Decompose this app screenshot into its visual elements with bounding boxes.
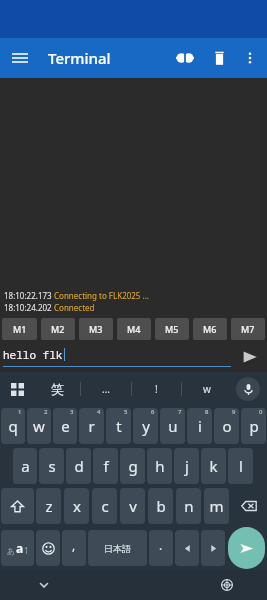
staticText: 18:10:22.173 <box>4 290 54 301</box>
button[interactable]: u <box>160 408 185 444</box>
staticText: Connected <box>54 302 95 313</box>
staticText: s <box>48 456 56 476</box>
button[interactable]: Send <box>228 527 265 569</box>
button[interactable]: ! <box>132 372 181 406</box>
button[interactable]: M5 <box>155 318 189 340</box>
button[interactable]: Move cursor right <box>201 530 225 566</box>
button[interactable]: d <box>66 448 91 484</box>
staticText: y <box>142 416 150 436</box>
staticText: q <box>8 416 18 436</box>
button[interactable]: s <box>39 448 64 484</box>
staticText: M1 <box>13 323 27 335</box>
staticText: 0 <box>259 408 263 416</box>
button[interactable]: Menu <box>0 38 40 78</box>
button[interactable]: b <box>148 488 173 524</box>
button[interactable]: ... <box>81 372 131 406</box>
staticText: hello flk <box>3 347 63 362</box>
staticText: x <box>73 496 81 516</box>
button[interactable]: Shift <box>1 488 34 524</box>
button[interactable]: r <box>79 408 104 444</box>
button[interactable]: M6 <box>193 318 227 340</box>
button[interactable]: Voice input <box>236 377 260 401</box>
staticText: f <box>103 456 109 476</box>
button[interactable]: Send <box>237 342 263 372</box>
staticText: Terminal <box>48 48 111 68</box>
button[interactable]: Emoji <box>36 530 60 566</box>
button[interactable]: w <box>182 372 231 406</box>
staticText: M2 <box>51 323 65 335</box>
button[interactable]: Backspace <box>232 488 266 524</box>
button[interactable]: M7 <box>231 318 265 340</box>
staticText: b <box>156 496 166 516</box>
button[interactable]: j <box>174 448 199 484</box>
button[interactable]: e <box>53 408 77 444</box>
staticText: . <box>159 537 163 553</box>
staticText: M7 <box>241 323 255 335</box>
staticText: 1 <box>18 408 22 416</box>
button[interactable]: n <box>176 488 201 524</box>
button[interactable]: x <box>64 488 89 524</box>
staticText: ... <box>102 382 111 396</box>
staticText: g <box>128 456 138 476</box>
button[interactable]: Change language <box>213 571 241 599</box>
button[interactable]: p <box>241 408 266 444</box>
staticText: 18:10:24.202 <box>4 302 54 313</box>
button[interactable]: q <box>1 408 25 444</box>
staticText: 8 <box>205 408 209 416</box>
button[interactable]: o <box>214 408 239 444</box>
button[interactable]: Clear <box>203 42 235 74</box>
button[interactable]: y <box>133 408 158 444</box>
staticText: 9 <box>232 408 236 416</box>
button[interactable]: f <box>93 448 118 484</box>
staticText: Connecting to FLK2025 ... <box>54 290 149 301</box>
staticText: M4 <box>127 323 141 335</box>
staticText: j <box>185 456 189 476</box>
staticText: 笑 <box>51 381 64 397</box>
button[interactable]: , <box>62 530 86 566</box>
button[interactable]: m <box>204 488 229 524</box>
staticText: 日本語 <box>104 543 131 554</box>
staticText: i <box>198 416 202 436</box>
button[interactable]: 日本語 <box>88 530 147 566</box>
button[interactable]: M1 <box>2 318 37 340</box>
staticText: k <box>209 456 218 476</box>
button[interactable]: c <box>92 488 117 524</box>
button[interactable]: M2 <box>41 318 75 340</box>
button[interactable]: 笑 <box>34 372 80 406</box>
staticText: M6 <box>203 323 217 335</box>
staticText: 1 <box>24 545 29 556</box>
button[interactable]: h <box>147 448 172 484</box>
button[interactable]: w <box>27 408 51 444</box>
button[interactable]: a <box>13 448 37 484</box>
button[interactable]: l <box>228 448 253 484</box>
button[interactable]: Switch input mode <box>1 530 34 566</box>
button[interactable]: M4 <box>117 318 151 340</box>
staticText: t <box>116 416 122 436</box>
button[interactable]: . <box>149 530 173 566</box>
staticText: n <box>184 496 194 516</box>
staticText: 6 <box>151 408 155 416</box>
button[interactable]: i <box>187 408 212 444</box>
staticText: 7 <box>178 408 182 416</box>
staticText: p <box>249 416 259 436</box>
button[interactable]: Clipboard <box>0 372 34 406</box>
staticText: ! <box>155 382 158 396</box>
button[interactable]: k <box>201 448 226 484</box>
button[interactable]: Connect <box>167 40 203 76</box>
staticText: a <box>16 540 24 556</box>
staticText: a <box>21 456 30 476</box>
button[interactable]: z <box>36 488 61 524</box>
button[interactable]: Move cursor left <box>175 530 199 566</box>
staticText: l <box>239 456 243 476</box>
staticText: r <box>88 416 95 436</box>
staticText: h <box>155 456 165 476</box>
staticText: v <box>129 496 137 516</box>
button[interactable]: t <box>106 408 131 444</box>
staticText: w <box>33 416 45 436</box>
button[interactable]: M3 <box>79 318 113 340</box>
button[interactable]: g <box>120 448 145 484</box>
button[interactable]: v <box>120 488 145 524</box>
button[interactable]: More options <box>235 43 265 73</box>
staticText: , <box>72 537 76 553</box>
button[interactable]: Hide keyboard <box>30 571 58 599</box>
